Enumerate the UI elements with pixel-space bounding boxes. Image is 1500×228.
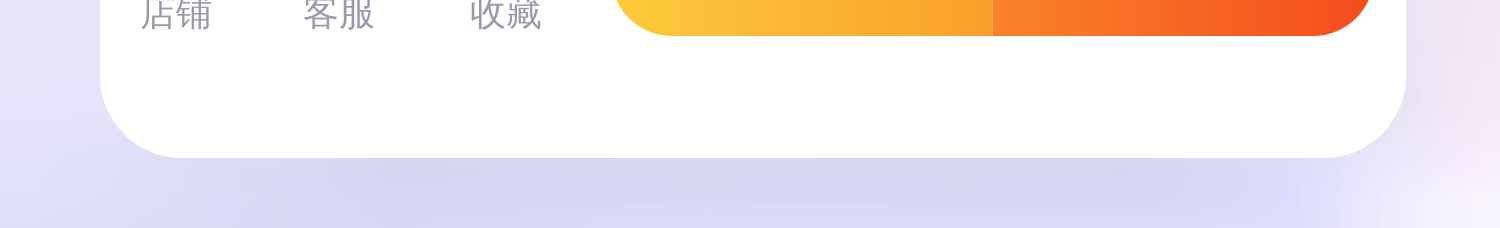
button[interactable]: 收藏 [431,0,581,41]
button[interactable]: 加入购物车 立即购买 [611,0,1374,36]
button[interactable]: 客服 [264,0,414,41]
staticText: 店铺 [140,0,212,35]
staticText: 收藏 [470,0,542,35]
button[interactable]: 店铺 [101,0,251,41]
staticText: 客服 [303,0,375,35]
